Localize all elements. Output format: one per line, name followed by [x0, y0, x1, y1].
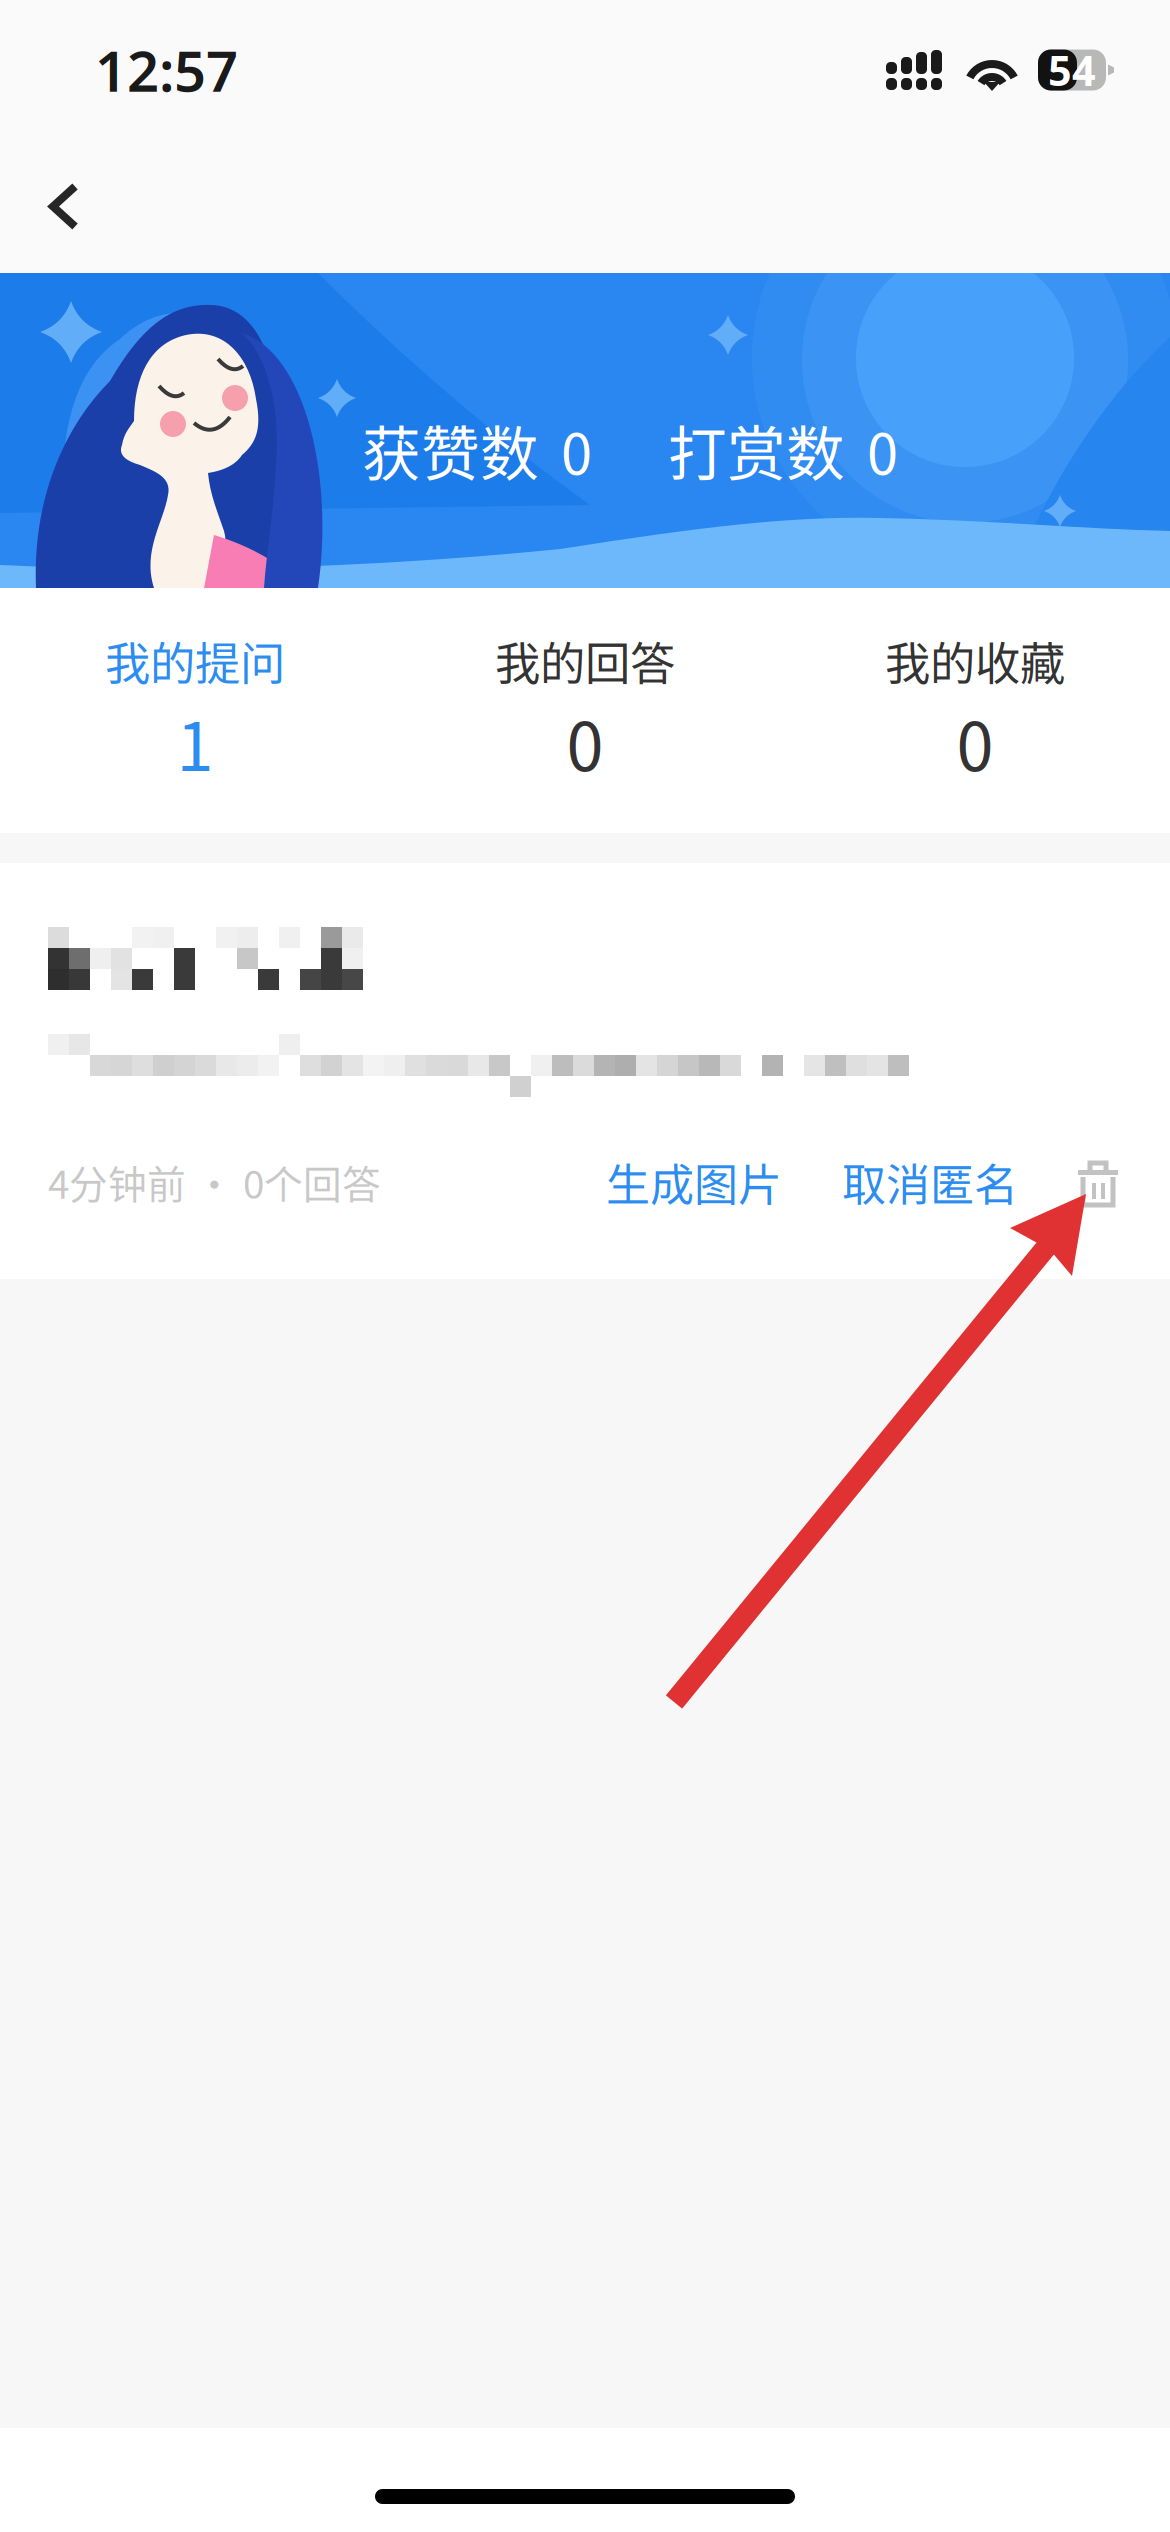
button[interactable]: 生成图片 — [606, 1128, 782, 1236]
staticText: 取消匿名 — [842, 1150, 1018, 1214]
button[interactable]: 我的回答 — [390, 588, 780, 833]
button[interactable]: 我的提问 — [0, 588, 390, 833]
staticText: 0 — [566, 694, 603, 790]
button[interactable]: Delete — [1018, 1136, 1170, 1228]
button[interactable]: 我的收藏 — [780, 588, 1170, 833]
staticText: 我的提问 — [105, 628, 285, 694]
staticText: 生成图片 — [606, 1150, 782, 1214]
staticText: 12:57 — [95, 33, 238, 107]
staticText: 打赏数 — [668, 407, 845, 492]
staticText: 0 — [956, 694, 993, 790]
button[interactable]: Back — [0, 146, 124, 266]
staticText: 0 — [867, 409, 898, 491]
staticText: 我的收藏 — [885, 628, 1065, 694]
staticText: 1 — [176, 694, 213, 790]
staticText: 获赞数 — [362, 407, 539, 492]
staticText: 54 — [1048, 43, 1096, 97]
staticText: 我的回答 — [495, 628, 675, 694]
staticText: 4分钟前 · 0个回答 — [48, 1154, 381, 1210]
button[interactable]: 取消匿名 — [782, 1128, 1018, 1236]
staticText: 0 — [561, 409, 592, 491]
